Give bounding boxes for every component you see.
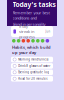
button[interactable]: Read for 20 minutes xyxy=(11,76,53,81)
staticText: Jun xyxy=(46,30,51,33)
staticText: 8 day streak in progress xyxy=(19,23,35,39)
staticText: Read for 20 minutes xyxy=(18,77,47,80)
button[interactable]: Drink 8 glasses of water xyxy=(11,63,53,69)
button[interactable]: 8 day streak in progress xyxy=(11,26,53,37)
staticText: Today's tasks xyxy=(12,0,55,9)
staticText: Evening gratitude log xyxy=(18,71,49,74)
staticText: blend in personality xyxy=(12,22,45,27)
staticText: Remember your best conditions and xyxy=(12,10,49,21)
staticText: Morning mindfulness xyxy=(18,58,48,61)
button[interactable]: Evening gratitude log xyxy=(11,69,53,75)
button[interactable]: Morning mindfulness xyxy=(11,57,53,62)
staticText: Habits, which build xyxy=(12,45,51,50)
staticText: Drink 8 glasses of water xyxy=(18,64,50,68)
staticText: up your day xyxy=(12,50,36,55)
